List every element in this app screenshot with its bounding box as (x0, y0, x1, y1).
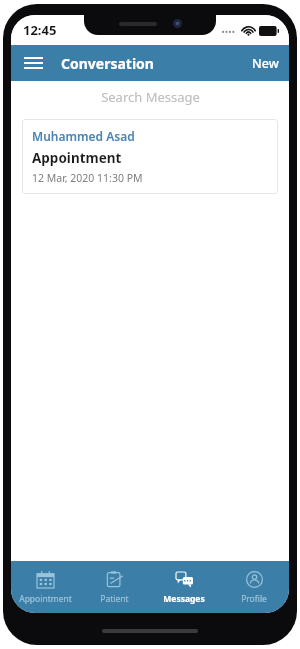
staticText: 12:45 (23, 21, 57, 39)
staticText: Profile (241, 593, 267, 605)
staticText: Muhammed Asad (32, 128, 135, 144)
staticText: Appointment (19, 593, 72, 605)
staticText: Patient (100, 593, 129, 605)
button[interactable]: Patient (80, 561, 149, 613)
staticText: Conversation (61, 54, 154, 73)
staticText: Appointment (32, 149, 122, 167)
staticText: Messages (163, 593, 205, 605)
button[interactable]: Messages (149, 561, 219, 613)
button[interactable]: Search Message (11, 81, 289, 113)
button[interactable]: Appointment (11, 561, 80, 613)
staticText: Search Message (101, 88, 200, 106)
button[interactable]: Profile (219, 561, 289, 613)
staticText: New (252, 55, 279, 72)
staticText: 12 Mar, 2020 11:30 PM (32, 171, 143, 185)
button[interactable]: Open navigation menu (17, 47, 49, 79)
button[interactable]: Muhammed Asad (22, 119, 278, 194)
button[interactable]: New (242, 49, 289, 78)
